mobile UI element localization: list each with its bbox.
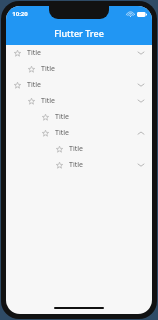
button[interactable]: Title bbox=[6, 77, 152, 93]
button[interactable]: Title bbox=[6, 141, 152, 157]
staticText: 10:20 bbox=[12, 10, 28, 18]
staticText: Title bbox=[55, 112, 69, 122]
staticText: Title bbox=[55, 128, 69, 138]
button[interactable]: Expand bbox=[136, 96, 146, 106]
staticText: Title bbox=[69, 144, 83, 154]
staticText: Flutter Tree bbox=[54, 27, 104, 39]
staticText: Title bbox=[41, 96, 55, 106]
staticText: Title bbox=[27, 80, 41, 90]
button[interactable]: Collapse bbox=[136, 128, 146, 138]
button[interactable]: Title bbox=[6, 93, 152, 109]
staticText: Title bbox=[27, 48, 41, 58]
button[interactable]: Expand bbox=[136, 160, 146, 170]
button[interactable]: Title bbox=[6, 45, 152, 61]
button[interactable]: Title bbox=[6, 61, 152, 77]
button[interactable]: Title bbox=[6, 125, 152, 141]
staticText: Title bbox=[69, 160, 83, 170]
staticText: Title bbox=[41, 64, 55, 74]
button[interactable]: Expand bbox=[136, 80, 146, 90]
button[interactable]: Title bbox=[6, 109, 152, 125]
button[interactable]: Expand bbox=[136, 48, 146, 58]
button[interactable]: Title bbox=[6, 157, 152, 173]
